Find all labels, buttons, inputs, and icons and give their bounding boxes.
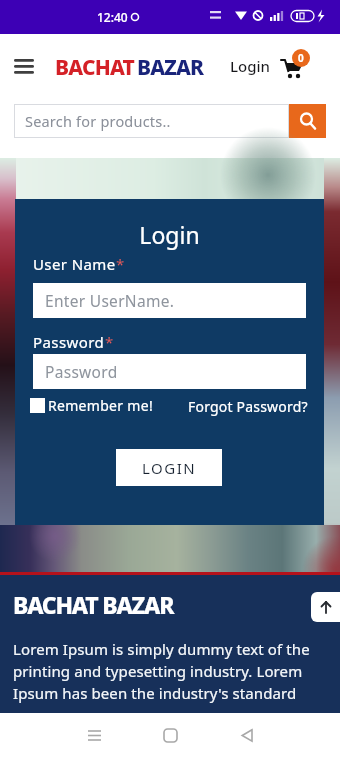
button[interactable]	[80, 721, 108, 749]
staticText: Password	[45, 361, 118, 382]
staticText: *	[105, 332, 114, 352]
staticText: Search for products..	[25, 111, 171, 131]
button[interactable]: LOGIN	[116, 449, 222, 486]
staticText: Login	[230, 56, 270, 76]
button[interactable]	[311, 592, 340, 622]
button[interactable]: Enter UserName.	[33, 283, 306, 318]
staticText: Password	[33, 332, 105, 352]
staticText: BACHAT BAZAR	[13, 589, 174, 620]
button[interactable]: Login	[226, 52, 274, 80]
button[interactable]: Password	[33, 354, 306, 389]
staticText: User Name	[33, 254, 116, 274]
staticText: 12:40	[97, 9, 128, 25]
staticText: Login	[15, 219, 324, 250]
staticText: Enter UserName.	[45, 290, 175, 311]
button[interactable]	[289, 104, 326, 138]
button[interactable]: Forgot Password?	[165, 397, 308, 416]
button[interactable]	[10, 53, 38, 79]
button[interactable]: Search for products..	[14, 104, 289, 138]
staticText: 0	[298, 51, 304, 65]
button[interactable]: 0	[281, 49, 313, 81]
staticText: LOGIN	[142, 458, 197, 478]
staticText: *	[116, 254, 125, 274]
staticText: Lorem Ipsum is simply dummy text of the …	[13, 639, 310, 704]
staticText: Remember me!	[48, 396, 153, 415]
staticText: BACHAT	[55, 53, 134, 82]
button[interactable]: BACHAT	[55, 53, 204, 82]
button[interactable]	[233, 721, 261, 749]
staticText: BAZAR	[137, 53, 204, 82]
button[interactable]	[156, 721, 184, 749]
staticText: Forgot Password?	[188, 397, 308, 416]
